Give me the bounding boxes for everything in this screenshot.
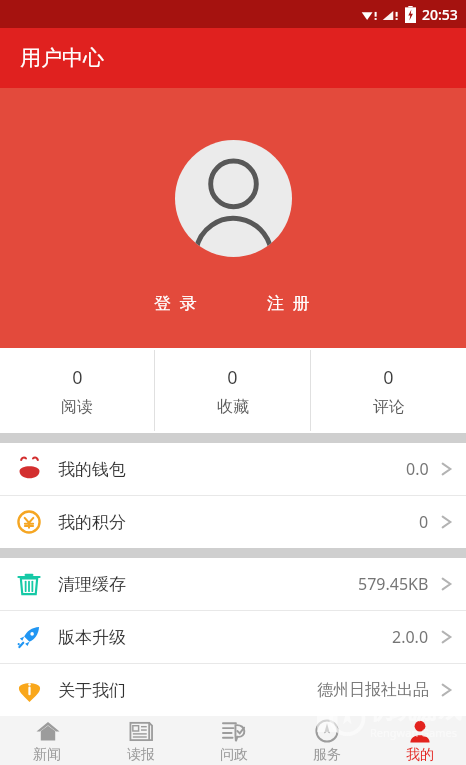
- staticText: 0: [383, 365, 394, 390]
- staticText: 评论: [373, 397, 405, 417]
- staticText: 问政: [220, 746, 248, 764]
- staticText: 读报: [127, 746, 155, 764]
- staticText: 用户中心: [20, 45, 104, 71]
- button[interactable]: 注 册: [255, 285, 324, 320]
- staticText: 0: [72, 365, 83, 390]
- staticText: 20:53: [422, 5, 458, 24]
- staticText: 关于我们: [58, 680, 126, 701]
- staticText: 服务: [313, 746, 341, 764]
- button[interactable]: 我的: [373, 716, 466, 765]
- button[interactable]: 服务: [280, 716, 373, 765]
- staticText: 版本升级: [58, 627, 126, 648]
- staticText: 清理缓存: [58, 574, 126, 595]
- staticText: 我的钱包: [58, 459, 126, 480]
- button[interactable]: 新闻: [0, 716, 94, 765]
- staticText: 仍玩游戏: [370, 696, 462, 725]
- staticText: 2.0.0: [392, 626, 429, 648]
- button[interactable]: 0: [311, 348, 466, 433]
- staticText: 我的: [406, 746, 434, 764]
- button[interactable]: 我的积分: [0, 496, 466, 548]
- staticText: 阅读: [61, 397, 93, 417]
- button[interactable]: 清理缓存: [0, 558, 466, 610]
- staticText: 0: [419, 511, 429, 533]
- staticText: 579.45KB: [358, 573, 429, 595]
- staticText: 新闻: [33, 746, 61, 764]
- button[interactable]: 问政: [187, 716, 280, 765]
- staticText: 0.0: [406, 458, 429, 480]
- button[interactable]: 读报: [94, 716, 187, 765]
- button[interactable]: 登 录: [142, 285, 211, 320]
- staticText: 0: [227, 365, 238, 390]
- staticText: 德州日报社出品: [317, 680, 429, 700]
- staticText: 收藏: [217, 397, 249, 417]
- staticText: 注 册: [267, 291, 312, 314]
- button[interactable]: 0: [155, 348, 310, 433]
- staticText: 登 录: [154, 291, 199, 314]
- button[interactable]: 版本升级: [0, 611, 466, 663]
- button[interactable]: 关于我们: [0, 664, 466, 716]
- staticText: Rengwan Games: [370, 725, 458, 740]
- button[interactable]: 0: [0, 348, 154, 433]
- button[interactable]: 我的钱包: [0, 443, 466, 495]
- staticText: 我的积分: [58, 512, 126, 533]
